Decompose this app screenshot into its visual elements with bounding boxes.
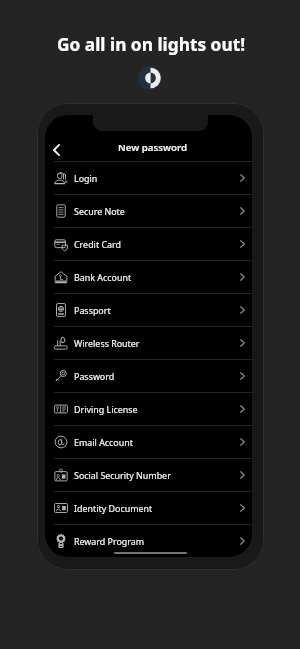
staticText: Social Security Number	[74, 469, 171, 481]
staticText: Passport	[74, 304, 111, 316]
staticText: Secure Note	[74, 205, 125, 217]
staticText: Go all in on lights out!	[1, 33, 300, 57]
staticText: Driving License	[74, 403, 138, 415]
button[interactable]: Bank Account	[45, 261, 252, 293]
staticText: Identity Document	[74, 502, 153, 514]
button[interactable]: Credit Card	[45, 228, 252, 260]
staticText: New password	[118, 141, 188, 154]
button[interactable]: Back	[46, 140, 66, 160]
button[interactable]: Passport	[45, 294, 252, 326]
button[interactable]: Password	[45, 360, 252, 392]
button[interactable]: Email Account	[45, 426, 252, 458]
staticText: Bank Account	[74, 271, 132, 283]
button[interactable]: Reward Program	[45, 525, 252, 557]
staticText: Email Account	[74, 436, 133, 448]
button[interactable]: Identity Document	[45, 492, 252, 524]
button[interactable]: Social Security Number	[45, 459, 252, 491]
button[interactable]: Wireless Router	[45, 327, 252, 359]
button[interactable]: Secure Note	[45, 195, 252, 227]
button[interactable]: Driving License	[45, 393, 252, 425]
staticText: Login	[74, 172, 98, 184]
staticText: Wireless Router	[74, 337, 140, 349]
staticText: Password	[74, 370, 115, 382]
staticText: Reward Program	[74, 535, 145, 547]
staticText: Credit Card	[74, 238, 121, 250]
button[interactable]: Login	[45, 162, 252, 194]
